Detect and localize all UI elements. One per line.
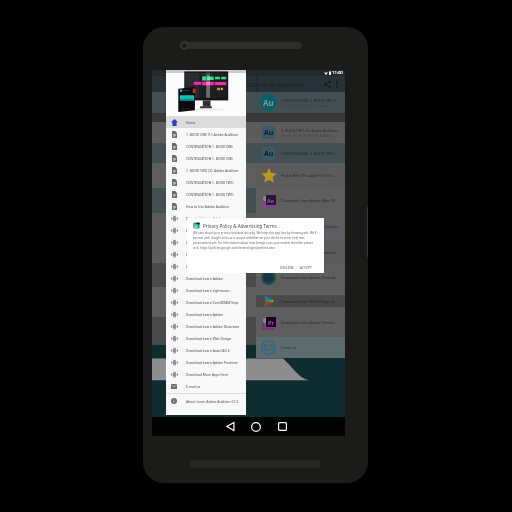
button[interactable]: CONTINUATION 1. BOOK TWO <box>166 188 246 200</box>
button[interactable]: Au <box>256 143 345 163</box>
staticText: CONTINUATION: 3. BOOK TWO (... <box>281 151 339 156</box>
button[interactable]: DECLINE <box>278 264 296 270</box>
staticText: Download Learn Adobe <box>186 228 223 232</box>
button[interactable]: Download Learn AutoCAD 6 <box>166 344 246 356</box>
staticText: Download Learn Adobe <box>186 264 223 268</box>
staticText: Home <box>186 120 196 124</box>
button[interactable]: Download Learn CorelDRAW Step <box>166 296 246 308</box>
button[interactable]: Download Learn Adobe <box>166 248 246 260</box>
staticText: Download Learn Adobe After Eff... <box>281 198 339 203</box>
staticText: Pr <box>268 319 274 326</box>
staticText: Au <box>264 128 274 138</box>
staticText: CONTINUATION 1. BOOK ONE <box>186 156 233 160</box>
staticText: Download More Apps Here <box>186 372 229 376</box>
staticText: 1. BOOK TWO (2): Adobe Audition <box>186 168 239 172</box>
button[interactable]: CONTINUATION 1. BOOK TWO <box>166 176 246 188</box>
button[interactable]: Download More Apps Here <box>166 368 246 380</box>
button[interactable]: 1. BOOK ONE (1): Adobe Audition <box>166 128 246 140</box>
button[interactable]: About Learn Adobe Audition CC 6 <box>166 395 246 407</box>
staticText: Download Learn Adobe <box>186 240 223 244</box>
staticText: CONTINUATION 1. BOOK ONE <box>186 144 233 148</box>
button[interactable]: Home <box>246 417 266 436</box>
staticText: 1. BOOK ONE (1): Adobe Audition <box>186 132 238 136</box>
staticText: 11:00 <box>332 70 343 76</box>
staticText: Download Learn Adobe Illustrator <box>186 324 240 328</box>
button[interactable]: Download Learn Adobe Premiere <box>166 356 246 368</box>
button[interactable]: Download Learn Adobe <box>166 260 246 272</box>
button[interactable]: Pr <box>256 307 345 337</box>
staticText: Download Learn Adobe <box>186 312 223 316</box>
staticText: Download Learn Web Design <box>186 336 232 340</box>
button[interactable]: Download Learn Adobe <box>166 272 246 284</box>
button[interactable]: Recents <box>272 417 292 436</box>
staticText: Download Learn Web Design (4... <box>281 299 337 304</box>
button[interactable]: Share <box>320 77 334 91</box>
button[interactable]: CONTINUATION 1. BOOK ONE <box>166 152 246 164</box>
staticText: Download Learn Adobe InDesign... <box>281 224 340 229</box>
staticText: CONTINUATION: 2. BOOK ONE (1... <box>281 98 340 103</box>
staticText: Au <box>263 97 274 108</box>
button[interactable]: CONTINUATION 1. BOOK ONE <box>166 140 246 152</box>
button[interactable]: 1. BOOK TWO (2): Adobe Audition <box>166 164 246 176</box>
button[interactable]: Id <box>256 213 345 240</box>
staticText: CONTINUATION 1. BOOK TWO <box>186 192 234 196</box>
button[interactable]: Ae <box>256 188 345 213</box>
staticText: E-mail us <box>281 345 297 350</box>
button[interactable]: Download Learn Adobe <box>166 212 246 224</box>
staticText: Download Learn Lightroom - <box>186 288 232 292</box>
staticText: CS6 Step by Step Guide <box>247 81 304 88</box>
staticText: Download Learn Adobe Premiere <box>186 360 239 364</box>
button[interactable]: Download Learn Web Design (4... <box>256 295 345 307</box>
staticText: 2. BOOK TWO (2): Adobe Audition... <box>281 128 341 133</box>
staticText: We care about your privacy and data secu… <box>193 231 320 250</box>
staticText: ACCEPT <box>300 265 312 269</box>
button[interactable]: Back <box>220 417 240 436</box>
button[interactable]: Au <box>256 240 345 265</box>
button[interactable]: Download Learn Lightroom - <box>166 284 246 296</box>
button[interactable]: ACCEPT <box>298 264 314 270</box>
button[interactable]: E-mail us <box>166 380 246 392</box>
staticText: Please Rate This App Five (5) St... <box>281 173 336 178</box>
button[interactable]: Au <box>256 92 345 113</box>
staticText: Part Two (2): BOOK ONE (1): Adobe A... <box>281 104 333 108</box>
staticText: Id <box>268 223 274 230</box>
button[interactable]: E-mail us <box>256 337 345 358</box>
button[interactable]: Download Learn Adobe <box>166 224 246 236</box>
staticText: Download Learn Adobe <box>186 252 223 256</box>
staticText: E-mail us <box>186 384 201 388</box>
button[interactable]: Download Learn Adobe <box>166 236 246 248</box>
staticText: DECLINE <box>280 265 294 269</box>
staticText: How to Use Adobe Audition <box>186 204 230 208</box>
button[interactable]: Au <box>256 122 345 143</box>
button[interactable]: Download Learn Adobe Illustrator <box>166 320 246 332</box>
staticText: Download Learn Adobe <box>186 216 223 220</box>
button[interactable]: Download Learn Adobe Photosh... <box>256 265 345 290</box>
staticText: CONTINUATION 1. BOOK TWO <box>186 180 234 184</box>
staticText: Download Learn CorelDRAW Step <box>186 300 239 304</box>
button[interactable]: Download Learn Web Design <box>166 332 246 344</box>
staticText: Download Learn Adobe Photosh... <box>281 275 339 280</box>
staticText: Download Learn Adobe <box>186 276 223 280</box>
staticText: About Learn Adobe Audition CC 6 <box>186 399 239 403</box>
button[interactable]: More options <box>331 78 343 90</box>
button[interactable]: Please Rate This App Five (5) St... <box>256 163 345 188</box>
button[interactable]: Home <box>166 116 246 128</box>
button[interactable]: How to Use Adobe Audition <box>166 200 246 212</box>
staticText: Au <box>264 149 274 159</box>
staticText: Privacy Policy & Advertising Terms <box>203 223 277 229</box>
staticText: Ae <box>267 197 275 204</box>
staticText: Download Learn AutoCAD 6 <box>186 348 230 352</box>
staticText: Download Learn Adobe Audition... <box>281 250 339 255</box>
staticText: Part One (1): BOOK TWO (2): Adobe A... <box>281 134 334 138</box>
button[interactable]: Download Learn Adobe <box>166 308 246 320</box>
staticText: Download Learn Adobe Premier... <box>281 320 338 325</box>
